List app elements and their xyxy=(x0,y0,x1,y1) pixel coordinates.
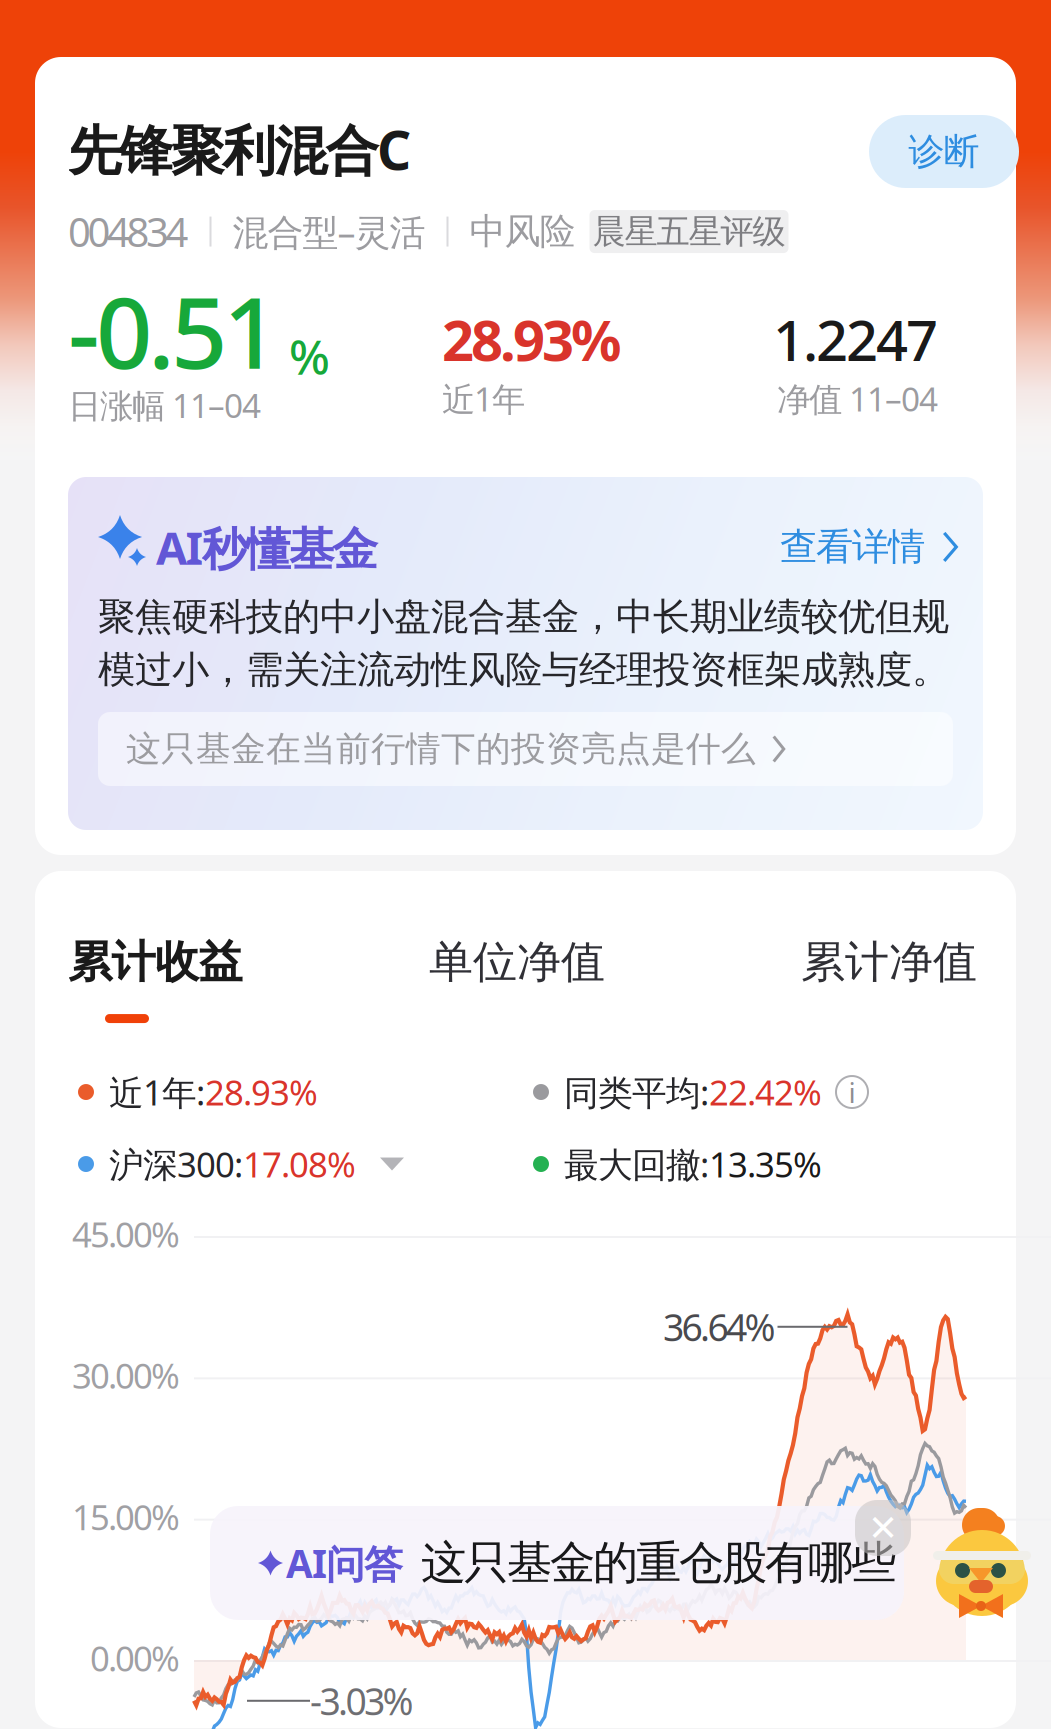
button[interactable]: Info xyxy=(836,1073,868,1111)
staticText: 沪深300: xyxy=(109,1141,243,1187)
staticText: % xyxy=(289,324,330,388)
button[interactable]: 这只基金在当前行情下的投资亮点是什么 xyxy=(98,712,953,786)
button[interactable]: AI问答 xyxy=(210,1506,904,1620)
staticText: 净值 11–04 xyxy=(777,376,938,421)
staticText: -0.51 xyxy=(68,265,279,396)
staticText: 17.08% xyxy=(243,1141,356,1187)
staticText: 近1年: xyxy=(109,1069,205,1115)
staticText: AI问答 xyxy=(286,1537,403,1589)
staticText: 中风险 xyxy=(469,209,575,254)
staticText: 近1年 xyxy=(442,376,525,421)
staticText: 混合型–灵活 xyxy=(232,208,425,255)
staticText: 晨星五星评级 xyxy=(592,211,785,252)
staticText: 单位净值 xyxy=(429,935,605,989)
staticText: 先锋聚利混合C xyxy=(68,114,411,185)
staticText: 30.00% xyxy=(72,1352,180,1398)
staticText: 13.35% xyxy=(709,1141,822,1187)
staticText: 累计收益 xyxy=(68,935,242,989)
staticText: i xyxy=(848,1073,855,1111)
staticText: 004834 xyxy=(68,205,188,258)
staticText: 这只基金在当前行情下的投资亮点是什么 xyxy=(126,728,756,770)
staticText: 累计净值 xyxy=(801,935,977,989)
staticText: 0.00% xyxy=(90,1635,180,1681)
staticText: AI秒懂基金 xyxy=(156,517,377,577)
staticText: -3.03% xyxy=(310,1676,413,1726)
staticText: 最大回撤: xyxy=(564,1141,709,1187)
staticText: 36.64% xyxy=(663,1302,775,1352)
staticText: 诊断 xyxy=(908,129,979,174)
button[interactable]: 查看详情 xyxy=(780,524,959,570)
staticText: 查看详情 xyxy=(780,524,925,570)
button[interactable]: Close xyxy=(855,1500,911,1556)
button[interactable]: 单位净值 xyxy=(429,935,605,989)
staticText: 1.2247 xyxy=(773,302,938,376)
staticText: 模过小，需关注流动性风险与经理投资框架成熟度。 xyxy=(98,647,949,693)
staticText: 这只基金的重仓股有哪些 xyxy=(421,1535,896,1591)
button[interactable]: 诊断 xyxy=(869,115,1019,188)
staticText: ✕ xyxy=(868,1508,898,1548)
staticText: 聚焦硬科技的中小盘混合基金，中长期业绩较优但规 xyxy=(98,594,949,640)
staticText: 28.93% xyxy=(442,302,622,376)
staticText: 同类平均: xyxy=(564,1069,709,1115)
staticText: 28.93% xyxy=(205,1069,318,1115)
staticText: 15.00% xyxy=(72,1494,180,1540)
staticText: 22.42% xyxy=(709,1069,822,1115)
staticText: 日涨幅 11–04 xyxy=(68,383,261,427)
button[interactable]: 累计收益 xyxy=(68,935,242,1023)
button[interactable]: 累计净值 xyxy=(801,935,977,989)
staticText: 45.00% xyxy=(72,1211,180,1257)
